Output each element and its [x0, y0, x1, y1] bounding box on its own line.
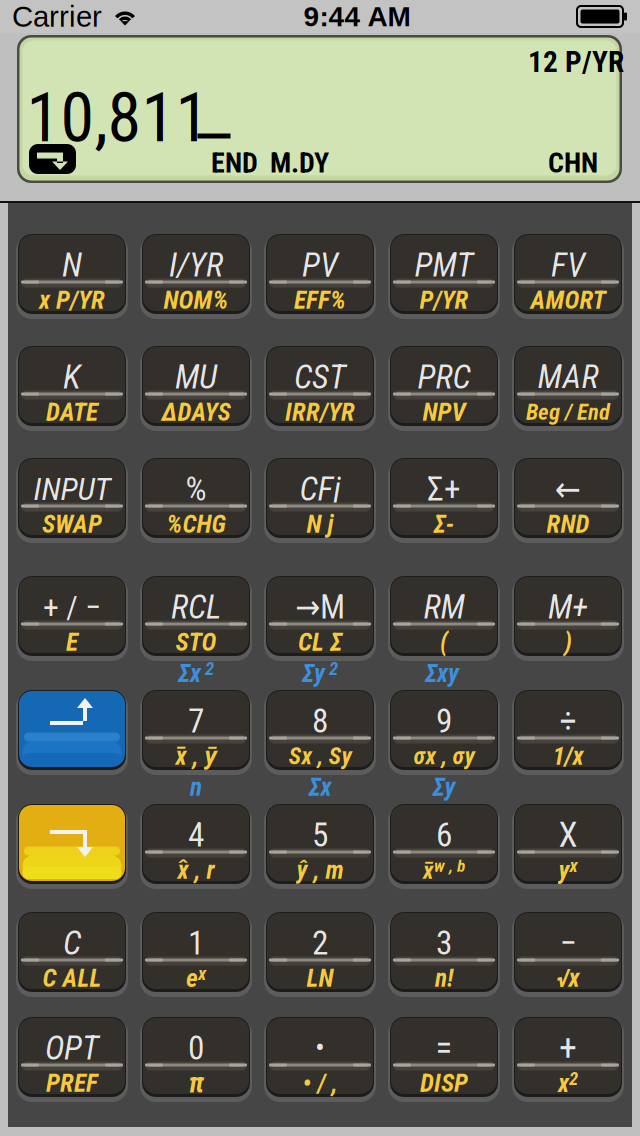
staticText: 2	[312, 923, 328, 963]
button[interactable]: M+	[515, 577, 621, 653]
button[interactable]: 2	[267, 913, 373, 989]
button[interactable]: ÷	[515, 691, 621, 767]
staticText: MAR	[537, 357, 598, 397]
staticText: N	[62, 245, 82, 285]
staticText: 1	[188, 923, 204, 963]
button[interactable]: 4	[143, 805, 249, 881]
button[interactable]: 7	[143, 691, 249, 767]
staticText: IRR/YR	[285, 397, 355, 427]
staticText: ΔDAYS	[161, 397, 230, 427]
button[interactable]: OPT	[19, 1018, 125, 1094]
staticText: %	[185, 469, 206, 509]
button[interactable]: 6	[391, 805, 497, 881]
staticText: )	[564, 627, 572, 657]
staticText: INPUT	[33, 470, 110, 508]
button[interactable]: +	[515, 1018, 621, 1094]
staticText: Σx	[308, 772, 331, 802]
button[interactable]: MAR	[515, 347, 621, 423]
staticText: RM	[423, 587, 464, 627]
staticText: CL Σ	[298, 627, 342, 657]
button[interactable]: ←	[515, 459, 621, 535]
button[interactable]: K	[19, 347, 125, 423]
staticText: PREF	[46, 1068, 98, 1098]
staticText: E	[66, 627, 78, 657]
button[interactable]: Σ+	[391, 459, 497, 535]
staticText: Σx 2	[178, 658, 214, 688]
button[interactable]: CST	[267, 347, 373, 423]
staticText: x̄w , b	[423, 856, 465, 884]
button[interactable]: 8	[267, 691, 373, 767]
staticText: 4	[188, 815, 204, 855]
button[interactable]: •	[267, 1018, 373, 1094]
button[interactable]: 0	[143, 1018, 249, 1094]
staticText: 9:44 AM	[303, 1, 410, 32]
staticText: END M.DY	[211, 147, 329, 179]
staticText: (	[440, 627, 448, 657]
button[interactable]: RM	[391, 577, 497, 653]
staticText: n!	[435, 963, 453, 993]
staticText: 6	[436, 815, 452, 855]
button[interactable]: N	[19, 235, 125, 311]
staticText: •	[315, 1031, 325, 1065]
staticText: 7	[188, 701, 204, 741]
staticText: NPV	[422, 397, 465, 427]
button[interactable]: RCL	[143, 577, 249, 653]
staticText: Carrier	[12, 0, 102, 33]
staticText: −	[559, 923, 576, 963]
staticText: ex	[186, 963, 206, 993]
button[interactable]: + / −	[19, 577, 125, 653]
staticText: • / ,	[302, 1068, 337, 1098]
button[interactable]: FV	[515, 235, 621, 311]
button[interactable]: CFj	[267, 459, 373, 535]
staticText: N j	[306, 509, 333, 539]
staticText: MU	[175, 357, 217, 397]
staticText: Sx , Sy	[288, 742, 351, 770]
staticText: PRC	[417, 357, 470, 397]
staticText: ŷ , m	[296, 855, 343, 885]
staticText: 5	[312, 815, 328, 855]
button[interactable]: INPUT	[19, 459, 125, 535]
button[interactable]: =	[391, 1018, 497, 1094]
staticText: π	[188, 1067, 203, 1099]
button[interactable]: 3	[391, 913, 497, 989]
staticText: x P/YR	[39, 285, 105, 315]
staticText: +	[559, 1027, 577, 1069]
button[interactable]: %	[143, 459, 249, 535]
button[interactable]: X	[515, 805, 621, 881]
staticText: RND	[546, 509, 589, 539]
staticText: C ALL	[42, 963, 101, 993]
button[interactable]: C	[19, 913, 125, 989]
staticText: 12 P/YR	[528, 45, 624, 79]
button[interactable]: I/YR	[143, 235, 249, 311]
staticText: x̂ , r	[177, 855, 214, 885]
button[interactable]: 5	[267, 805, 373, 881]
staticText: 8	[312, 701, 328, 741]
button[interactable]: Shift blue	[19, 691, 125, 767]
staticText: STO	[175, 627, 216, 657]
button[interactable]: PV	[267, 235, 373, 311]
staticText: CFj	[299, 469, 340, 509]
staticText: Σ-	[433, 509, 454, 539]
staticText: P/YR	[419, 285, 468, 315]
staticText: 1/x	[552, 741, 583, 771]
staticText: ÷	[559, 701, 576, 741]
button[interactable]: 9	[391, 691, 497, 767]
staticText: RCL	[171, 587, 221, 627]
button[interactable]: MU	[143, 347, 249, 423]
button[interactable]: →M	[267, 577, 373, 653]
button[interactable]: 1	[143, 913, 249, 989]
staticText: ←	[555, 469, 581, 509]
staticText: DATE	[46, 397, 98, 427]
staticText: FV	[551, 245, 585, 285]
button[interactable]: −	[515, 913, 621, 989]
button[interactable]: PMT	[391, 235, 497, 311]
staticText: Σy 2	[302, 658, 338, 688]
staticText: X	[558, 815, 577, 855]
button[interactable]: PRC	[391, 347, 497, 423]
button[interactable]: Shift gold	[19, 805, 125, 881]
staticText: 10,811	[26, 78, 209, 158]
staticText: Σxy	[425, 658, 463, 688]
staticText: Σ+	[427, 469, 461, 509]
staticText: yx	[558, 855, 577, 885]
staticText: Σy	[432, 772, 455, 802]
